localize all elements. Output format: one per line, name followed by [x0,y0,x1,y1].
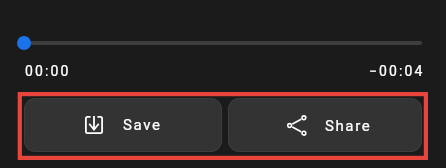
staticText: Share [325,117,372,135]
staticText: −00:04 [369,63,425,79]
button[interactable]: Share [228,98,422,152]
staticText: 00:00 [25,63,71,79]
staticText: Save [123,116,162,134]
button[interactable]: Playback position [17,36,31,50]
button[interactable]: Save [24,98,222,152]
